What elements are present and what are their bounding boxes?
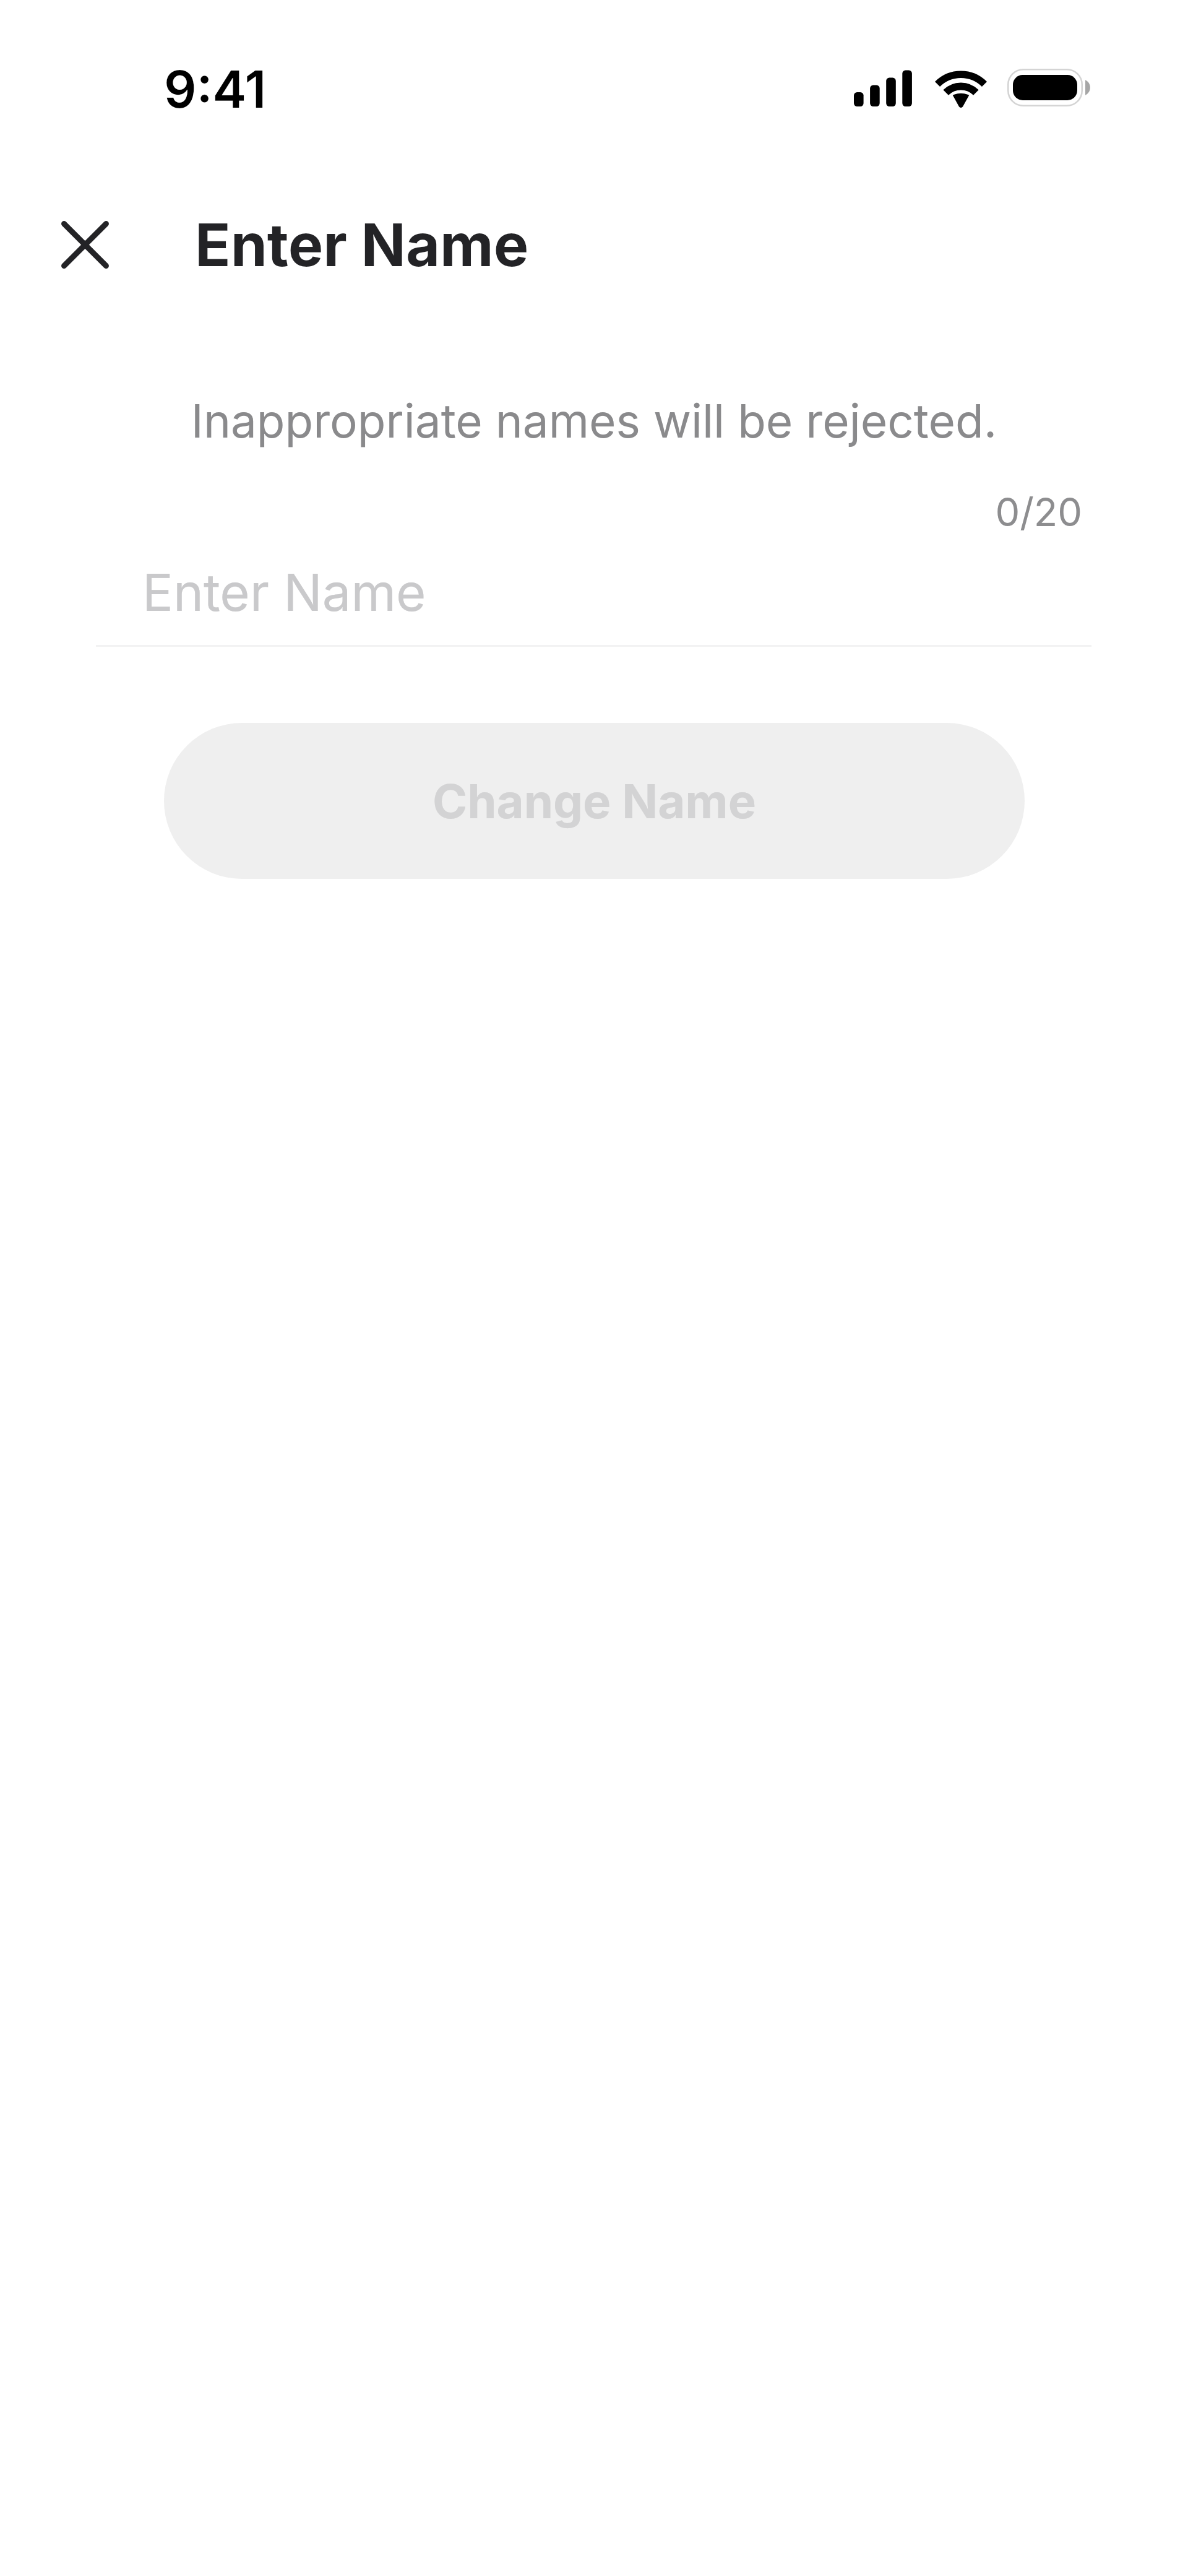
button[interactable]: Close [48,207,123,282]
staticText: Enter Name [195,209,529,280]
other: Cellular signal [854,70,912,106]
staticText: Inappropriate names will be rejected. [0,393,1188,449]
button[interactable]: Enter Name [96,551,1091,647]
other: Wi-Fi [934,69,988,109]
staticText: 9:41 [164,59,267,120]
staticText: 0/20 [0,488,1082,535]
button[interactable]: Change Name [164,723,1025,879]
staticText: Enter Name [142,561,426,623]
staticText: Change Name [433,772,756,829]
other: Battery [1007,69,1091,108]
